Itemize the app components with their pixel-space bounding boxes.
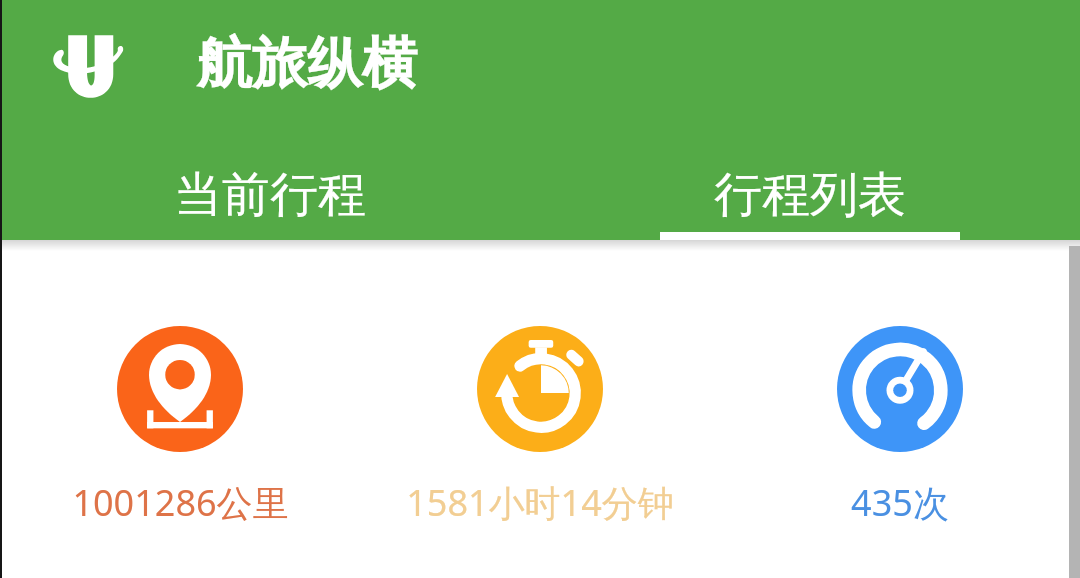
staticText: 航旅纵横	[197, 29, 417, 98]
staticText: 行程列表	[714, 165, 906, 225]
staticText: 1001286公里	[72, 478, 289, 527]
staticText: 1581小时14分钟	[406, 478, 674, 527]
button[interactable]: 行程列表	[540, 130, 1080, 240]
button[interactable]: 435次	[720, 326, 1080, 527]
staticText: 当前行程	[174, 165, 366, 225]
button[interactable]: 1581小时14分钟	[360, 326, 720, 527]
other: Umetrip logo	[52, 33, 124, 99]
button[interactable]: 当前行程	[0, 130, 540, 240]
staticText: 435次	[851, 478, 949, 527]
button[interactable]: 1001286公里	[0, 326, 360, 527]
